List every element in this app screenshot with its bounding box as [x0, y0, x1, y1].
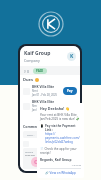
button[interactable]: Invoice [53, 150, 75, 167]
button[interactable]: BHK Villa Elite [23, 100, 77, 112]
staticText: 🔗 View on WhatsApp [45, 171, 76, 175]
button[interactable]: https://payments.cashfree.com/links/p02d… [45, 132, 81, 144]
staticText: C [62, 158, 66, 166]
button[interactable]: BHK Villa Elite [23, 85, 77, 97]
staticText: Hey Deeksha! 👋 [40, 106, 70, 111]
staticText: Regards, Kaif Group [40, 158, 72, 162]
staticText: C [34, 158, 38, 166]
staticText: Your rent at BHK Villa Elite, Jan/Feb 20… [40, 113, 81, 121]
button[interactable]: Invoice [25, 150, 47, 167]
staticText: Invoice [25, 150, 34, 153]
staticText: K [70, 53, 74, 60]
staticText: 📱 [40, 124, 44, 128]
staticText: 1:34 PM [40, 163, 81, 166]
staticText: Jan 01 - Feb 28, 2025 [32, 93, 57, 97]
staticText: Rent [32, 89, 38, 93]
staticText: Pay [67, 89, 73, 93]
staticText: BHK Villa Elite [32, 85, 55, 89]
staticText: BHK Villa Elite [32, 100, 55, 104]
staticText: Type… [27, 133, 35, 136]
button[interactable]: Profile [67, 52, 76, 61]
staticText: ₹ 0 [24, 69, 29, 74]
staticText: be informed [26, 42, 75, 53]
button[interactable]: Pay [67, 89, 73, 93]
staticText: 2025.pdf [25, 153, 35, 156]
staticText: Company [24, 58, 40, 63]
staticText: PAID [36, 69, 44, 73]
staticText: Jan 01 - Feb 28, 2025 [32, 108, 57, 112]
staticText: Dues [23, 77, 33, 82]
staticText: Rent [32, 104, 38, 108]
button[interactable]: Type… [23, 131, 39, 138]
button[interactable]: PAID [36, 69, 44, 73]
staticText: Attachments [23, 154, 46, 159]
staticText: Comments [23, 124, 42, 129]
button[interactable]: 🔗 View on WhatsApp [40, 171, 81, 175]
staticText: Pay via the Payment Link : [45, 124, 81, 132]
staticText: Invoice [53, 150, 62, 153]
staticText: Kaif Group [24, 50, 51, 57]
staticText: 📄 Check the app for your receipt! [40, 147, 81, 155]
